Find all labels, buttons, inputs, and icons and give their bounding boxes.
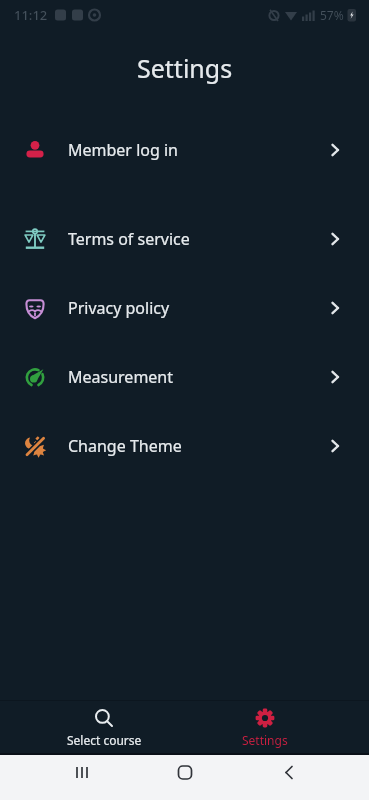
staticText: 11:12 <box>14 6 48 24</box>
staticText: Settings <box>137 51 233 85</box>
button[interactable]: Settings <box>205 700 325 753</box>
button[interactable]: Select course <box>44 700 164 753</box>
staticText: Privacy policy <box>68 297 170 319</box>
staticText: Measurement <box>68 366 174 388</box>
staticText: Terms of service <box>68 228 190 250</box>
staticText: Member log in <box>68 139 178 161</box>
button[interactable]: Terms of service <box>0 204 369 273</box>
button[interactable]: Measurement <box>0 342 369 411</box>
button[interactable]: Change Theme <box>0 411 369 480</box>
staticText: Change Theme <box>68 435 182 457</box>
button[interactable]: Member log in <box>0 115 369 184</box>
staticText: Select course <box>67 732 142 748</box>
staticText: Settings <box>242 732 288 748</box>
staticText: 57% <box>320 7 344 23</box>
button[interactable]: Privacy policy <box>0 273 369 342</box>
